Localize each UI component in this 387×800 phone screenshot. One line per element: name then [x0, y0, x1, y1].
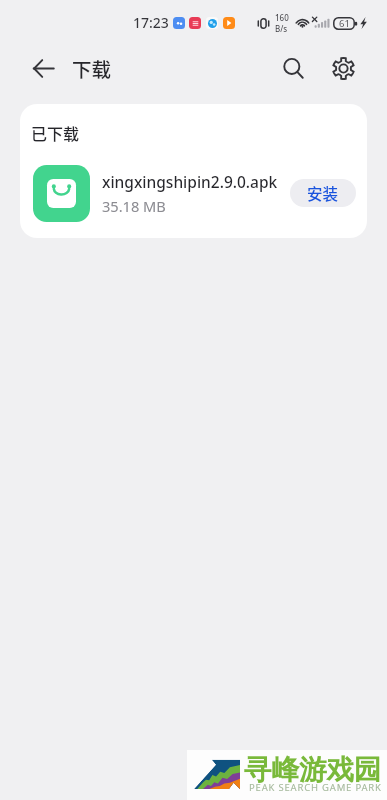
staticText: xingxingshipin2.9.0.apk — [102, 171, 278, 192]
staticText: 下载 — [72, 54, 112, 82]
button[interactable]: Search — [274, 49, 312, 87]
staticText: B/s — [275, 23, 288, 34]
staticText: PEAK SEARCH GAME PARK — [249, 781, 382, 794]
staticText: 160 — [275, 12, 289, 23]
staticText: 35.18 MB — [102, 196, 166, 216]
button[interactable]: xingxingshipin2.9.0.apk — [20, 157, 367, 229]
staticText: 寻峰游戏园 — [244, 753, 382, 788]
button[interactable]: Back — [27, 52, 59, 84]
button[interactable]: Settings — [324, 49, 362, 87]
staticText: 安装 — [307, 182, 339, 204]
button[interactable]: 安装 — [290, 179, 356, 207]
staticText: 61 — [339, 17, 350, 30]
staticText: 17:23 — [133, 13, 169, 32]
staticText: 已下载 — [31, 121, 80, 144]
